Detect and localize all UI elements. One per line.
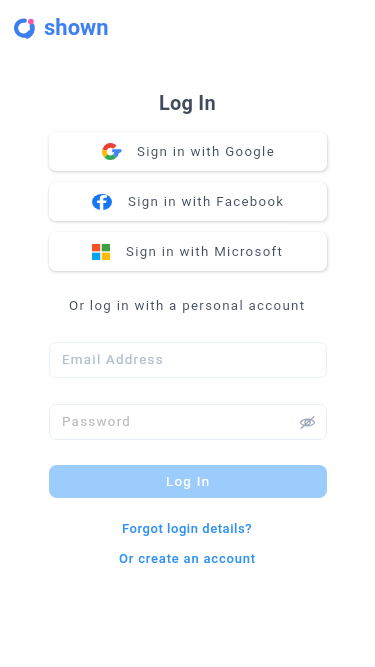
- button[interactable]: Email Address: [49, 342, 327, 378]
- button[interactable]: Sign in with Google: [49, 132, 327, 171]
- staticText: Sign in with Google: [137, 144, 275, 160]
- staticText: Email Address: [62, 352, 164, 368]
- button[interactable]: Password: [49, 404, 327, 440]
- button[interactable]: Log In: [49, 465, 327, 498]
- staticText: Sign in with Microsoft: [126, 244, 284, 260]
- staticText: Log In: [166, 474, 211, 490]
- staticText: Or create an account: [119, 551, 256, 566]
- staticText: Password: [62, 414, 132, 430]
- button[interactable]: Sign in with Facebook: [49, 182, 327, 221]
- staticText: Log In: [159, 91, 216, 114]
- button[interactable]: Show password: [296, 411, 318, 433]
- button[interactable]: Forgot login details?: [114, 518, 261, 539]
- staticText: Sign in with Facebook: [128, 194, 285, 210]
- staticText: Or log in with a personal account: [69, 298, 306, 314]
- button[interactable]: Sign in with Microsoft: [49, 232, 327, 271]
- button[interactable]: Or create an account: [111, 548, 264, 569]
- staticText: shown: [44, 15, 109, 41]
- staticText: Forgot login details?: [122, 521, 253, 536]
